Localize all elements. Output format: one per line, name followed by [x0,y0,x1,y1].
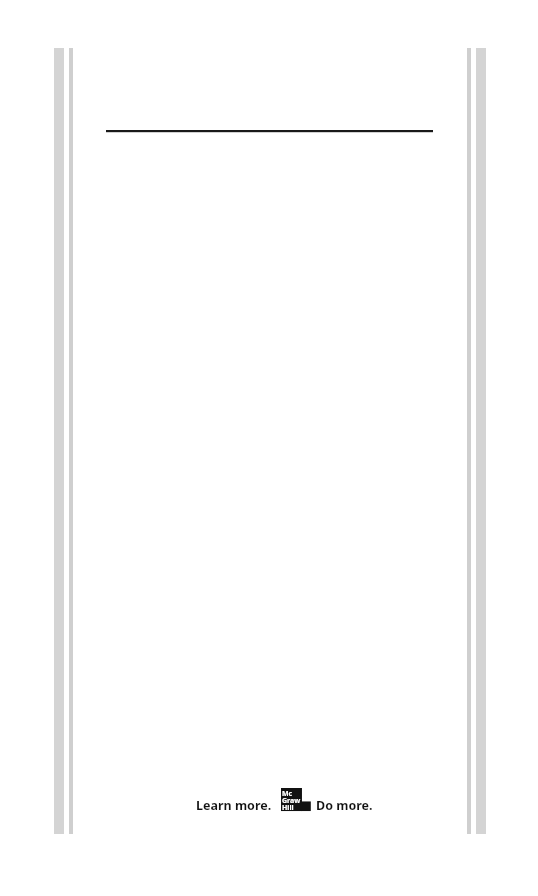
staticText: Learn more. [196,797,272,814]
staticText: Mc [282,789,293,796]
button[interactable]: McGraw Hill — Learn more. Do more. [196,786,373,818]
staticText: Graw [282,796,301,803]
staticText: Hill [282,803,294,810]
staticText: Do more. [316,797,373,814]
